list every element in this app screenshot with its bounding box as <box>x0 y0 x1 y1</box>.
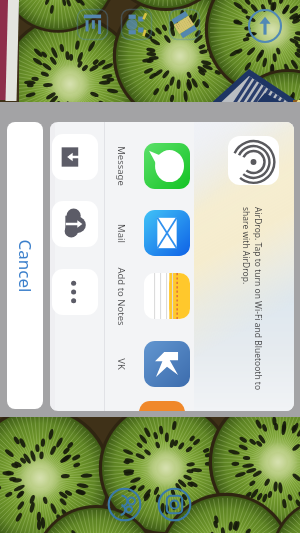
button[interactable]: More <box>52 269 98 315</box>
button[interactable]: People <box>107 487 142 522</box>
button[interactable]: Share <box>247 8 283 44</box>
button[interactable]: Camera <box>157 487 192 522</box>
button[interactable]: Crop <box>76 8 109 41</box>
button[interactable]: Message <box>104 135 194 197</box>
button[interactable]: AirDrop <box>228 136 279 185</box>
staticText: AirDrop. Tap to turn on Wi-Fi and Blueto… <box>240 207 264 391</box>
staticText: Mail <box>115 224 128 243</box>
button[interactable]: Save to Files <box>52 134 98 180</box>
button[interactable]: Mail <box>104 202 194 264</box>
button[interactable]: Save to Cloud <box>52 201 98 247</box>
button[interactable]: Filters <box>168 8 201 41</box>
staticText: VK <box>115 358 128 370</box>
staticText: Add to Notes <box>115 267 128 326</box>
button[interactable]: VK <box>104 333 194 395</box>
staticText: Message <box>115 146 128 186</box>
staticText: Cancel <box>13 239 36 292</box>
button[interactable]: Adjust <box>120 8 153 41</box>
button[interactable]: Cancel <box>7 122 43 409</box>
button[interactable]: Add to Notes <box>104 265 194 327</box>
